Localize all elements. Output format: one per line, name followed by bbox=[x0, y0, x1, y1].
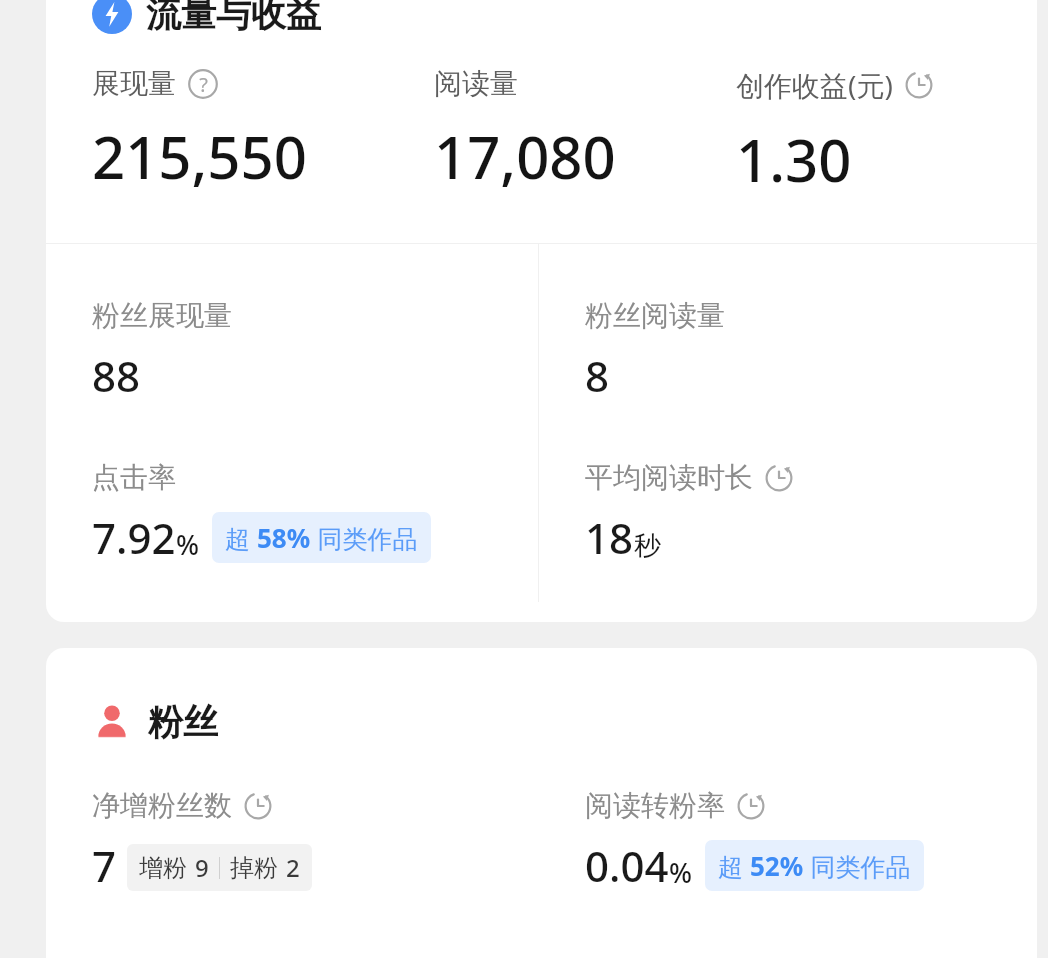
button[interactable]: 粉丝阅读量 bbox=[585, 298, 725, 404]
other: Fans bbox=[92, 702, 132, 742]
staticText: 粉丝展现量 bbox=[92, 298, 232, 333]
staticText: 增粉 bbox=[139, 853, 187, 883]
staticText: % bbox=[176, 526, 200, 563]
staticText: 88 bbox=[92, 347, 141, 404]
staticText: 超 bbox=[225, 521, 257, 555]
button[interactable]: 展现量 bbox=[92, 66, 434, 196]
staticText: 阅读转粉率 bbox=[585, 788, 725, 823]
staticText: 净增粉丝数 bbox=[92, 788, 232, 823]
staticText: 阅读量 bbox=[434, 66, 518, 101]
staticText: 215,550 bbox=[92, 117, 307, 196]
staticText: 0.04 bbox=[585, 837, 669, 894]
button[interactable]: Updated bbox=[737, 792, 765, 820]
button[interactable]: Updated bbox=[905, 71, 933, 99]
button[interactable]: 增粉 bbox=[139, 851, 300, 884]
staticText: 9 bbox=[195, 851, 209, 884]
button[interactable]: Help bbox=[188, 69, 218, 99]
staticText: 7.92 bbox=[92, 509, 176, 566]
button[interactable]: 创作收益(元) bbox=[736, 66, 1036, 199]
other: Traffic and revenue bbox=[92, 0, 132, 34]
staticText: 创作收益(元) bbox=[736, 66, 893, 104]
staticText: 同类作品 bbox=[311, 521, 418, 555]
staticText: 18 bbox=[585, 509, 634, 566]
button[interactable]: Fans bbox=[92, 700, 1037, 744]
button[interactable]: Traffic and revenue bbox=[92, 0, 1037, 36]
staticText: 粉丝 bbox=[148, 700, 218, 744]
button[interactable]: Updated bbox=[244, 792, 272, 820]
staticText: 平均阅读时长 bbox=[585, 460, 753, 495]
staticText: 流量与收益 bbox=[146, 0, 321, 36]
button[interactable]: Updated bbox=[765, 464, 793, 492]
staticText: 点击率 bbox=[92, 460, 176, 495]
button[interactable]: 粉丝展现量 bbox=[92, 298, 232, 404]
staticText: 8 bbox=[585, 347, 610, 404]
button[interactable]: 点击率 bbox=[92, 460, 431, 566]
staticText: 掉粉 bbox=[230, 853, 278, 883]
button[interactable]: 超 bbox=[718, 848, 911, 883]
button[interactable]: 阅读量 bbox=[434, 66, 736, 196]
staticText: 秒 bbox=[634, 529, 661, 563]
staticText: % bbox=[669, 854, 693, 891]
staticText: 超 bbox=[718, 849, 750, 883]
staticText: 2 bbox=[286, 851, 300, 884]
button[interactable]: 超 bbox=[225, 520, 418, 555]
button[interactable]: 平均阅读时长 bbox=[585, 460, 793, 566]
staticText: 7 bbox=[92, 837, 117, 894]
staticText: 52% bbox=[750, 848, 804, 883]
staticText: 粉丝阅读量 bbox=[585, 298, 725, 333]
staticText: 17,080 bbox=[434, 117, 616, 196]
staticText: 58% bbox=[257, 520, 311, 555]
staticText: ? bbox=[199, 71, 208, 98]
staticText: 展现量 bbox=[92, 66, 176, 101]
staticText: 1.30 bbox=[736, 120, 852, 199]
staticText: 同类作品 bbox=[804, 849, 911, 883]
